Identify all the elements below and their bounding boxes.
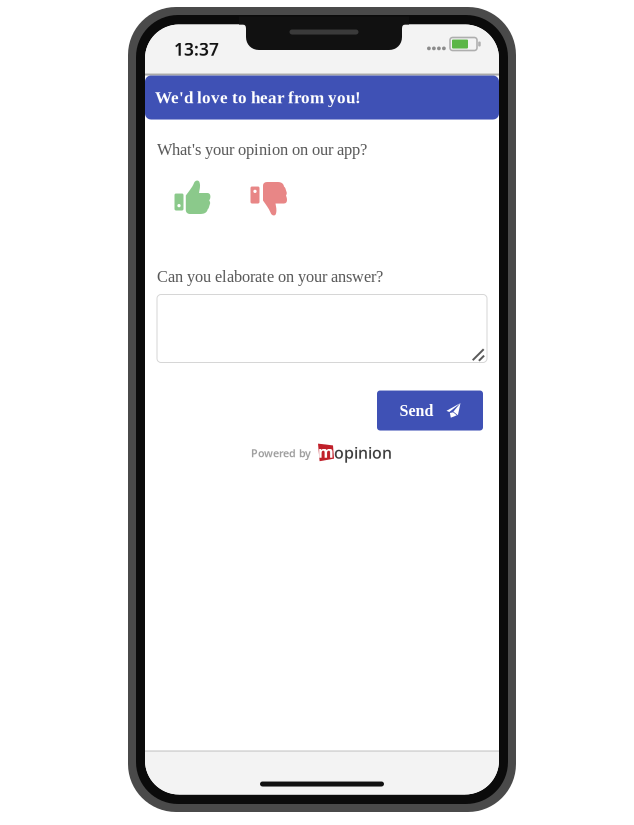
button[interactable]: We'd love to hear from you! [145,75,499,119]
staticText: opinion [334,442,392,463]
staticText: m [318,441,334,462]
button[interactable]: Send [377,390,483,430]
button[interactable]: Thumbs down — I dislike this app [250,179,288,217]
staticText: Powered by [251,446,311,460]
staticText: We'd love to hear from you! [155,88,361,107]
staticText: 13:37 [174,37,219,60]
button[interactable]: Thumbs up — I like this app [174,179,212,217]
staticText: Can you elaborate on your answer? [157,267,383,285]
staticText: Send [399,402,433,419]
staticText: What's your opinion on our app? [157,140,367,159]
